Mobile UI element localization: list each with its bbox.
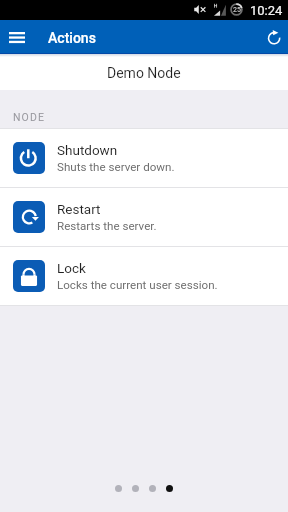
button[interactable]: Restart (0, 187, 288, 246)
staticText: 10:24 (250, 3, 283, 18)
staticText: Lock (57, 260, 86, 276)
button[interactable]: Open navigation menu (0, 20, 34, 54)
button[interactable]: Shutdown (0, 128, 288, 187)
staticText: Restarts the server. (57, 219, 157, 233)
staticText: Shutdown (57, 142, 118, 158)
button[interactable]: Page 4, current (166, 485, 173, 492)
button[interactable]: Page (132, 485, 139, 492)
button[interactable]: Page (115, 485, 122, 492)
staticText: Demo Node (107, 65, 181, 81)
staticText: Locks the current user session. (57, 278, 218, 292)
staticText: Shuts the server down. (57, 160, 175, 174)
button[interactable]: Page (149, 485, 156, 492)
staticText: NODE (13, 111, 45, 123)
button[interactable]: Lock (0, 246, 288, 305)
staticText: Restart (57, 201, 101, 217)
staticText: 25 (233, 6, 241, 14)
button[interactable]: Refresh (254, 20, 288, 54)
staticText: Actions (48, 30, 96, 46)
